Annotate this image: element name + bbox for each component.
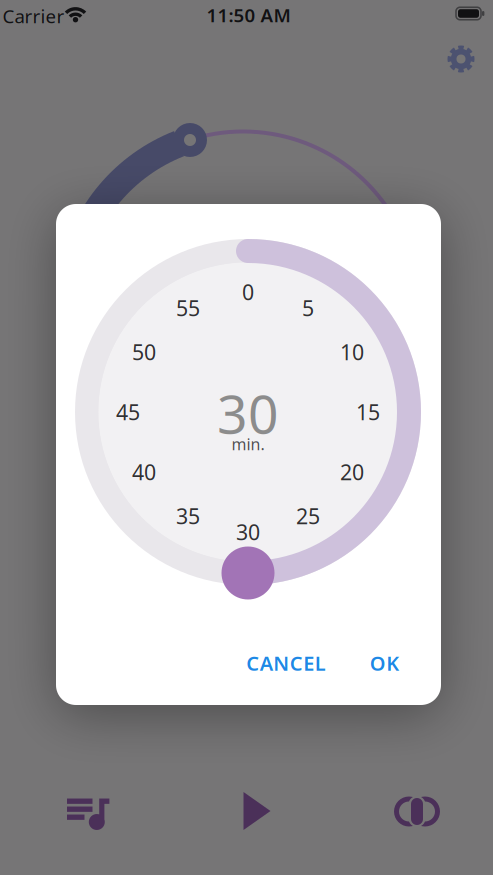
staticText: 45 [116, 398, 140, 426]
staticText: min. [231, 433, 264, 455]
button[interactable]: Play [243, 792, 270, 830]
button[interactable]: Binaural beats [393, 790, 441, 832]
staticText: Carrier [2, 4, 64, 28]
staticText: 55 [176, 294, 200, 322]
button[interactable]: Minutes slider [221, 546, 274, 599]
staticText: 0 [242, 278, 254, 306]
button[interactable]: OK [370, 650, 399, 676]
staticText: 30 [236, 518, 260, 546]
staticText: 50 [132, 338, 156, 366]
staticText: 30 [217, 378, 279, 448]
staticText: CANCEL [246, 650, 326, 676]
staticText: 35 [176, 502, 200, 530]
staticText: 11:50 AM [206, 3, 290, 27]
staticText: 15 [356, 398, 380, 426]
staticText: 5 [302, 294, 314, 322]
button[interactable]: Playlist [67, 795, 110, 830]
button[interactable]: Settings [447, 45, 474, 72]
staticText: OK [370, 650, 399, 676]
button[interactable]: CANCEL [246, 650, 326, 676]
staticText: 25 [296, 502, 320, 530]
staticText: 40 [132, 458, 156, 486]
staticText: 20 [340, 458, 364, 486]
staticText: 10 [340, 338, 364, 366]
